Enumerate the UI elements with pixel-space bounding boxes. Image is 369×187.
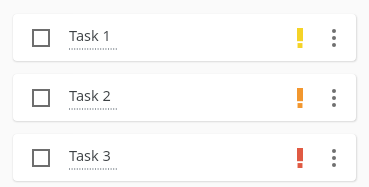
button[interactable]: Priority — [286, 24, 314, 52]
button[interactable]: More options — [320, 24, 348, 52]
button[interactable]: More options — [320, 144, 348, 172]
staticText: Task 1 — [69, 25, 111, 45]
button[interactable]: Complete Task 3 — [13, 134, 356, 181]
staticText: Task 3 — [69, 145, 111, 165]
button[interactable]: Complete Task 3 — [26, 143, 56, 173]
button[interactable]: Complete Task 1 — [26, 23, 56, 53]
button[interactable]: Complete Task 1 — [13, 14, 356, 61]
button[interactable]: Complete Task 2 — [13, 74, 356, 121]
button[interactable]: Priority — [286, 84, 314, 112]
button[interactable]: More options — [320, 84, 348, 112]
button[interactable]: Complete Task 2 — [26, 83, 56, 113]
staticText: Task 2 — [69, 85, 111, 105]
button[interactable]: Priority — [286, 144, 314, 172]
